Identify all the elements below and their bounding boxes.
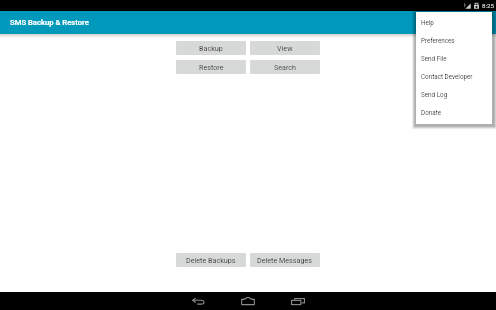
staticText: 8:25 <box>482 2 494 9</box>
button[interactable]: Send File <box>416 49 492 67</box>
button[interactable]: Preferences <box>416 31 492 49</box>
button[interactable]: Delete Messages <box>250 253 320 267</box>
staticText: Delete Backups <box>186 256 236 264</box>
staticText: Delete Messages <box>257 256 313 264</box>
staticText: Preferences <box>421 37 455 44</box>
button[interactable]: Contact Developer <box>416 67 492 85</box>
staticText: Donate <box>421 109 442 116</box>
button[interactable]: Backup <box>176 41 246 55</box>
staticText: Backup <box>199 44 223 52</box>
button[interactable]: Donate <box>416 103 492 121</box>
staticText: Contact Developer <box>421 73 473 80</box>
button[interactable]: Restore <box>176 60 246 74</box>
staticText: SMS Backup & Restore <box>10 18 89 27</box>
button[interactable]: Send Log <box>416 85 492 103</box>
button[interactable]: Home <box>223 292 273 310</box>
button[interactable]: View <box>250 41 320 55</box>
button[interactable]: Back <box>173 292 223 310</box>
button[interactable]: Recent apps <box>273 292 323 310</box>
staticText: Send File <box>421 55 447 62</box>
button[interactable]: Help <box>416 13 492 31</box>
staticText: Search <box>274 63 297 71</box>
staticText: Help <box>421 19 434 26</box>
staticText: View <box>277 44 293 52</box>
button[interactable]: Search <box>250 60 320 74</box>
staticText: Restore <box>199 63 224 71</box>
button[interactable]: Delete Backups <box>176 253 246 267</box>
staticText: Send Log <box>421 91 448 98</box>
